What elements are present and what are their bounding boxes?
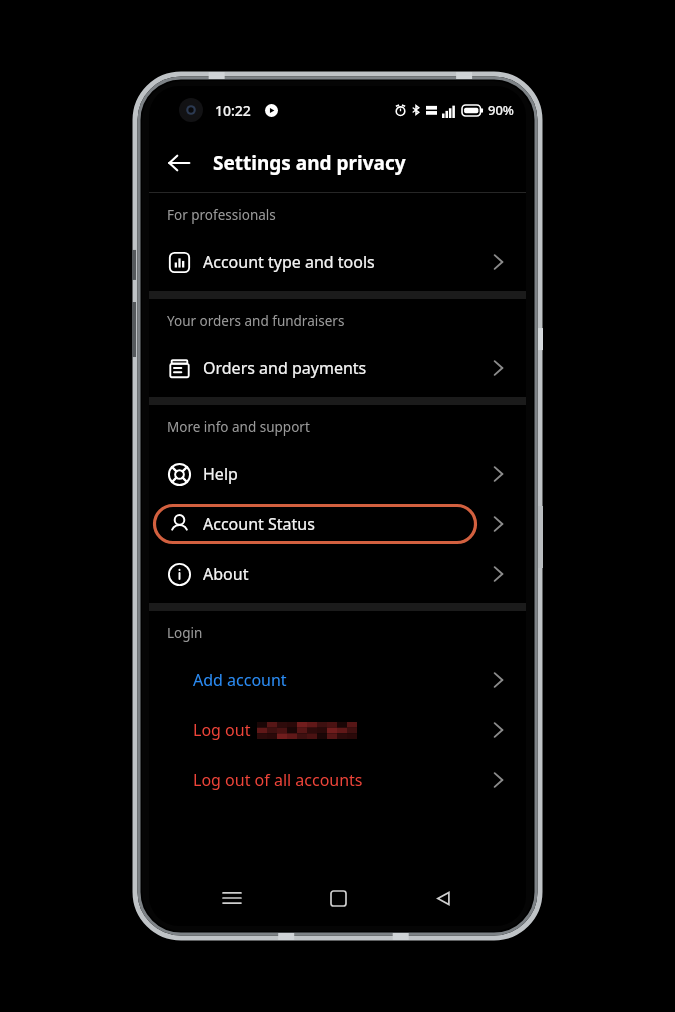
- button[interactable]: Log out of all accounts: [149, 755, 526, 805]
- staticText: Account Status: [203, 513, 315, 535]
- button[interactable]: Recent apps: [209, 875, 255, 921]
- button[interactable]: Account type and tools: [149, 237, 526, 287]
- button[interactable]: Log out: [149, 705, 526, 755]
- staticText: 90%: [488, 101, 514, 119]
- staticText: Orders and payments: [203, 357, 367, 379]
- button[interactable]: Add account: [149, 655, 526, 705]
- staticText: Account type and tools: [203, 251, 375, 273]
- button[interactable]: About: [149, 549, 526, 599]
- button[interactable]: Back: [155, 139, 203, 187]
- staticText: More info and support: [167, 418, 310, 436]
- button[interactable]: Help: [149, 449, 526, 499]
- button[interactable]: Account Status: [149, 499, 526, 549]
- staticText: Your orders and fundraisers: [167, 312, 345, 330]
- button[interactable]: Orders and payments: [149, 343, 526, 393]
- staticText: Help: [203, 463, 238, 485]
- staticText: Login: [167, 624, 203, 642]
- button[interactable]: Back: [420, 875, 466, 921]
- staticText: Log out of all accounts: [193, 769, 363, 791]
- staticText: About: [203, 563, 249, 585]
- staticText: Log out: [193, 719, 251, 741]
- staticText: Add account: [193, 669, 287, 691]
- staticText: 10:22: [215, 101, 251, 120]
- button[interactable]: Home: [315, 875, 361, 921]
- staticText: Settings and privacy: [213, 150, 406, 176]
- staticText: For professionals: [167, 206, 276, 224]
